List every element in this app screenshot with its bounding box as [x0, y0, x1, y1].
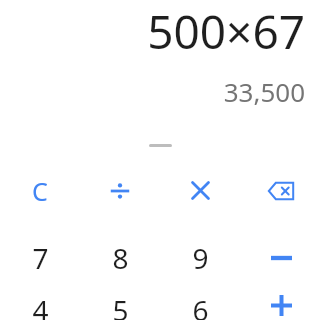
button[interactable] — [0, 133, 320, 157]
staticText: 5 — [112, 291, 129, 320]
button[interactable]: Backspace — [241, 157, 320, 224]
staticText: 33,500 — [223, 74, 305, 109]
staticText: C — [32, 174, 48, 208]
staticText: 6 — [192, 291, 209, 320]
staticText: 500×67 — [147, 0, 305, 59]
button[interactable]: 6 — [160, 291, 240, 320]
button[interactable]: Minus — [241, 224, 320, 291]
staticText: 4 — [32, 291, 49, 320]
staticText: 7 — [32, 239, 49, 277]
button[interactable]: 5 — [80, 291, 160, 320]
button[interactable]: 33,500 — [223, 59, 305, 109]
button[interactable]: Plus — [241, 291, 320, 320]
button[interactable]: 4 — [0, 291, 80, 320]
staticText: 9 — [192, 239, 209, 277]
button[interactable]: C — [0, 157, 80, 224]
button[interactable]: Divide — [80, 157, 160, 224]
button[interactable]: Multiply — [160, 157, 240, 224]
button[interactable]: 8 — [80, 224, 160, 291]
staticText: 8 — [112, 239, 129, 277]
button[interactable]: 9 — [160, 224, 240, 291]
button[interactable]: 7 — [0, 224, 80, 291]
